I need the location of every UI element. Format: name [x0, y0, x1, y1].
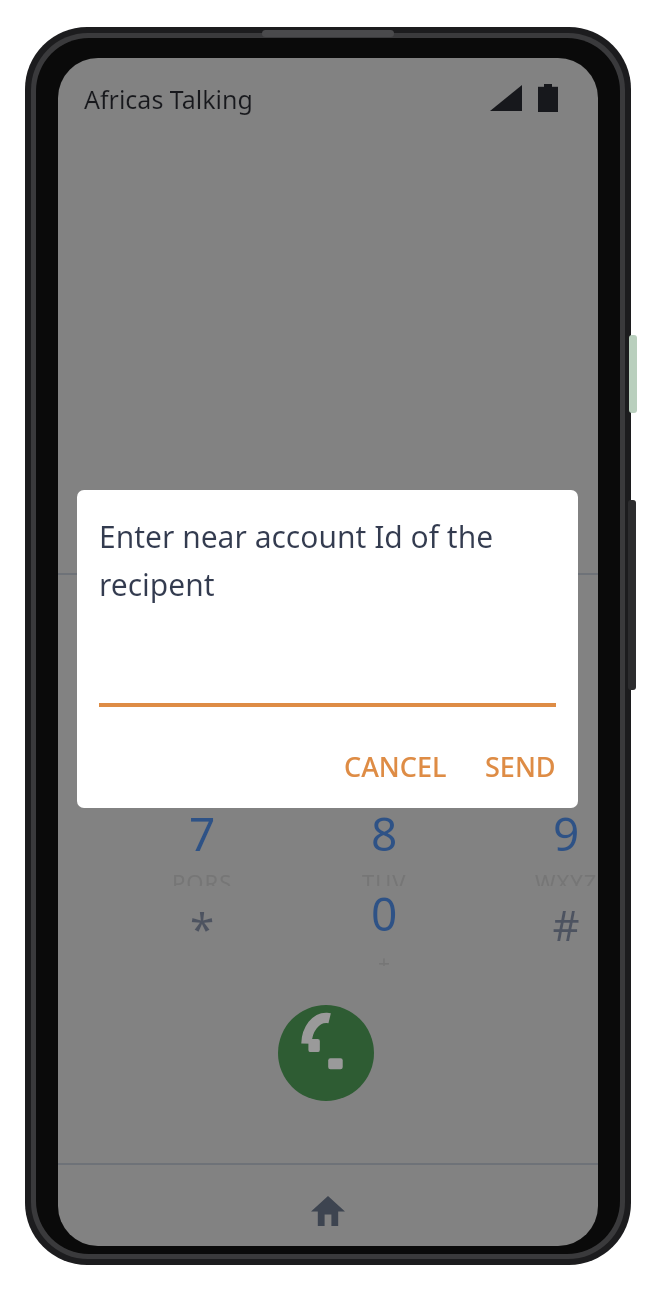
button[interactable]: Home — [58, 1165, 598, 1246]
button[interactable]: 7 — [144, 802, 260, 886]
staticText: TUV — [362, 867, 407, 886]
staticText: 7 — [189, 802, 216, 865]
button[interactable]: 9 — [508, 802, 598, 886]
staticText: CANCEL — [344, 748, 447, 785]
button[interactable]: SEND — [471, 738, 570, 795]
staticText: 9 — [553, 802, 580, 865]
staticText: + — [378, 949, 391, 966]
staticText: WXYZ — [535, 867, 598, 886]
button[interactable]: CANCEL — [330, 738, 461, 795]
staticText: 0 — [371, 882, 398, 945]
staticText: Africas Talking — [84, 82, 253, 116]
staticText: Enter near account Id of the recipent — [99, 516, 519, 604]
staticText: * — [144, 898, 260, 958]
button[interactable]: 8 — [326, 802, 442, 886]
button[interactable]: * — [144, 898, 260, 982]
staticText: PQRS — [172, 867, 233, 886]
button[interactable]: 0 — [326, 882, 442, 966]
staticText: # — [508, 896, 598, 953]
staticText: SEND — [485, 748, 556, 785]
staticText: 8 — [371, 802, 398, 865]
button[interactable]: Call — [278, 1005, 374, 1101]
button[interactable]: # — [508, 896, 598, 980]
